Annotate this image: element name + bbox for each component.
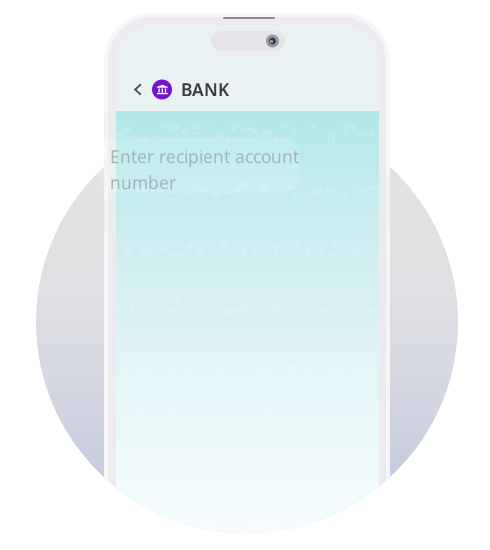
staticText: BANK bbox=[181, 78, 229, 101]
staticText: number bbox=[110, 171, 176, 194]
staticText: Enter recipient account bbox=[110, 145, 299, 168]
button[interactable]: BANK bbox=[128, 78, 363, 101]
